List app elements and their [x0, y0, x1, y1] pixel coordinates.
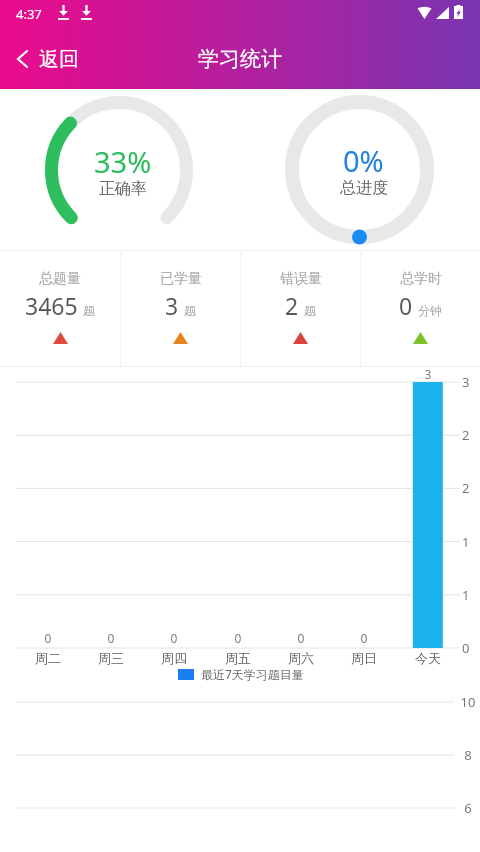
staticText: 2 [285, 290, 299, 321]
staticText: 6 [457, 799, 479, 817]
staticText: 题 [184, 303, 196, 318]
staticText: 返回 [39, 47, 79, 72]
staticText: 周二 [18, 650, 78, 666]
staticText: 周六 [271, 650, 331, 666]
staticText: 正确率 [99, 179, 147, 199]
staticText: 0 [399, 290, 413, 321]
staticText: 周五 [208, 650, 268, 666]
staticText: 总进度 [340, 178, 388, 198]
staticText: 学习统计 [198, 46, 282, 72]
staticText: 3 [462, 373, 470, 391]
button[interactable]: 已学量 [121, 250, 240, 366]
staticText: 33% [94, 142, 152, 181]
staticText: 10 [457, 693, 479, 711]
staticText: 2 [462, 426, 470, 444]
staticText: 总题量 [39, 270, 81, 288]
staticText: 总学时 [400, 270, 442, 288]
staticText: 3 [398, 366, 458, 382]
staticText: 4:37 [16, 5, 42, 23]
staticText: 周日 [334, 650, 394, 666]
button[interactable]: 总题量 [0, 250, 120, 366]
button[interactable]: 33% [45, 96, 193, 244]
staticText: 8 [457, 746, 479, 764]
staticText: 0 [18, 630, 78, 646]
staticText: 3465 [25, 290, 78, 321]
staticText: 今天 [398, 650, 458, 666]
staticText: 题 [304, 303, 316, 318]
staticText: 错误量 [280, 270, 322, 288]
staticText: 题 [83, 303, 95, 318]
staticText: 分钟 [418, 303, 442, 318]
staticText: 0 [334, 630, 394, 646]
staticText: 0 [81, 630, 141, 646]
button[interactable]: 返回 [0, 32, 93, 86]
button[interactable]: 0% [285, 95, 434, 244]
staticText: 0 [462, 639, 470, 657]
staticText: 已学量 [160, 270, 202, 288]
staticText: 1 [462, 533, 470, 551]
staticText: 0 [271, 630, 331, 646]
staticText: 周四 [144, 650, 204, 666]
staticText: 最近7天学习题目量 [201, 666, 304, 682]
staticText: 周三 [81, 650, 141, 666]
button[interactable]: 错误量 [241, 250, 360, 366]
staticText: 0 [208, 630, 268, 646]
staticText: 0% [343, 141, 384, 180]
staticText: 1 [462, 586, 470, 604]
button[interactable]: 总学时 [361, 250, 480, 366]
staticText: 2 [462, 479, 470, 497]
staticText: 0 [144, 630, 204, 646]
staticText: 3 [165, 290, 179, 321]
